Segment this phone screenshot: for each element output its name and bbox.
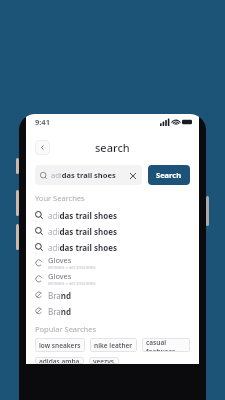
staticText: adidas trail shoes bbox=[48, 226, 117, 237]
button[interactable]: adidas trail shoes bbox=[35, 239, 190, 255]
button[interactable]: Brand bbox=[35, 287, 190, 303]
staticText: yeezys bbox=[93, 357, 115, 364]
button[interactable]: Gloves bbox=[35, 255, 190, 271]
button[interactable]: casual footwear bbox=[146, 338, 186, 352]
staticText: search bbox=[95, 140, 130, 155]
staticText: Search bbox=[156, 170, 182, 180]
staticText: Brand bbox=[48, 306, 72, 317]
staticText: casual footwear bbox=[146, 338, 186, 352]
staticText: nike leather bbox=[94, 341, 133, 350]
staticText: WOMEN > ACCESSORIES bbox=[48, 281, 96, 287]
button[interactable]: adidas amba bbox=[39, 357, 80, 364]
button[interactable]: adidas trail shoes bbox=[35, 207, 190, 223]
staticText: WOMEN > ACCESSORIES bbox=[48, 265, 96, 271]
staticText: Brand bbox=[48, 290, 72, 301]
staticText: adidas amba bbox=[39, 357, 80, 364]
button[interactable]: Brand bbox=[35, 303, 190, 319]
staticText: Your Searches bbox=[35, 193, 85, 203]
staticText: adidas trail shoes bbox=[48, 210, 117, 221]
staticText: Popular Searches bbox=[35, 324, 97, 334]
button[interactable]: adidas trail shoes bbox=[40, 165, 137, 185]
staticText: adidas trail shoes bbox=[51, 170, 116, 180]
button[interactable]: Gloves bbox=[35, 271, 190, 287]
staticText: Gloves bbox=[48, 271, 72, 281]
staticText: 9:41 bbox=[35, 117, 50, 127]
button[interactable]: low sneakers bbox=[39, 338, 81, 352]
button[interactable]: Back bbox=[35, 140, 50, 155]
staticText: Gloves bbox=[48, 255, 72, 265]
button[interactable]: nike leather bbox=[94, 338, 133, 352]
button[interactable]: Clear bbox=[128, 171, 137, 180]
button[interactable]: Search bbox=[148, 165, 190, 185]
staticText: adidas trail shoes bbox=[48, 242, 117, 253]
staticText: low sneakers bbox=[39, 341, 81, 350]
button[interactable]: yeezys bbox=[93, 357, 115, 364]
button[interactable]: adidas trail shoes bbox=[35, 223, 190, 239]
